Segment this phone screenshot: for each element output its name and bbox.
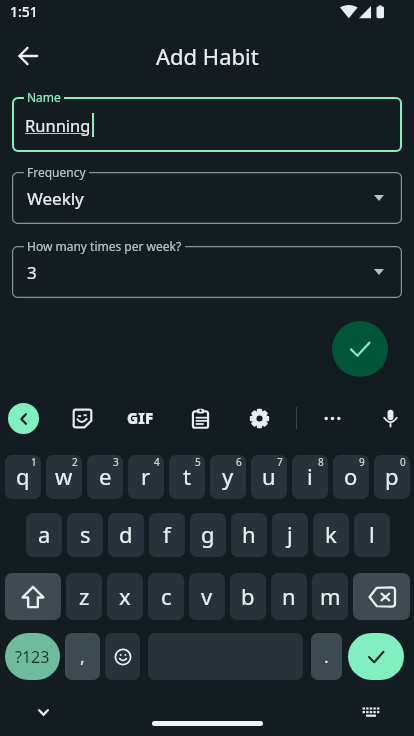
staticText: .: [324, 646, 329, 668]
button[interactable]: Emoji: [105, 633, 140, 680]
staticText: 3: [113, 455, 119, 469]
button[interactable]: i: [292, 455, 328, 499]
button[interactable]: Switch keyboard: [353, 694, 389, 730]
staticText: d: [119, 519, 133, 549]
staticText: y: [222, 461, 234, 491]
button[interactable]: ?123: [5, 633, 60, 680]
staticText: 4: [154, 455, 160, 469]
staticText: ,: [80, 646, 85, 668]
staticText: u: [262, 461, 276, 491]
button[interactable]: Back: [8, 36, 48, 76]
staticText: s: [80, 519, 91, 549]
button[interactable]: y: [210, 455, 246, 499]
staticText: c: [161, 581, 172, 611]
staticText: Name: [27, 89, 61, 105]
staticText: b: [241, 581, 255, 611]
staticText: 2: [72, 455, 78, 469]
staticText: 1:51: [10, 2, 38, 21]
button[interactable]: w: [46, 455, 82, 499]
button[interactable]: Enter: [348, 633, 404, 680]
button[interactable]: o: [333, 455, 369, 499]
button[interactable]: k: [313, 513, 349, 557]
staticText: z: [79, 581, 90, 611]
button[interactable]: e: [87, 455, 123, 499]
staticText: 5: [195, 455, 201, 469]
staticText: v: [201, 581, 213, 611]
button[interactable]: Frequency: [12, 172, 402, 224]
button[interactable]: .: [311, 633, 342, 680]
button[interactable]: s: [67, 513, 103, 557]
button[interactable]: z: [66, 573, 102, 620]
button[interactable]: a: [26, 513, 62, 557]
button[interactable]: c: [148, 573, 184, 620]
button[interactable]: g: [190, 513, 226, 557]
button[interactable]: Home: [152, 721, 263, 726]
staticText: w: [55, 461, 73, 491]
button[interactable]: Collapse toolbar: [8, 403, 39, 434]
button[interactable]: d: [108, 513, 144, 557]
staticText: Running: [25, 114, 91, 136]
button[interactable]: l: [354, 513, 390, 557]
button[interactable]: Shift: [5, 573, 61, 620]
staticText: e: [99, 461, 112, 491]
button[interactable]: Hide keyboard: [25, 694, 61, 730]
button[interactable]: Clipboard: [182, 400, 218, 436]
button[interactable]: x: [107, 573, 143, 620]
button[interactable]: More options: [314, 400, 350, 436]
button[interactable]: n: [271, 573, 307, 620]
staticText: 9: [359, 455, 365, 469]
staticText: j: [287, 519, 293, 549]
button[interactable]: Save habit: [332, 321, 388, 377]
staticText: q: [16, 461, 30, 491]
staticText: Add Habit: [156, 41, 259, 71]
staticText: x: [119, 581, 131, 611]
staticText: 1: [31, 455, 37, 469]
button[interactable]: q: [5, 455, 41, 499]
button[interactable]: Name: [12, 97, 402, 152]
staticText: l: [369, 519, 375, 549]
staticText: r: [141, 461, 151, 491]
button[interactable]: Stickers: [64, 400, 100, 436]
staticText: t: [183, 461, 191, 491]
button[interactable]: j: [272, 513, 308, 557]
button[interactable]: b: [230, 573, 266, 620]
button[interactable]: Settings: [241, 400, 277, 436]
staticText: 7: [277, 455, 283, 469]
staticText: p: [385, 461, 399, 491]
button[interactable]: h: [231, 513, 267, 557]
button[interactable]: f: [149, 513, 185, 557]
staticText: i: [307, 461, 313, 491]
staticText: Frequency: [27, 164, 86, 180]
button[interactable]: Voice input: [372, 400, 408, 436]
staticText: ?123: [15, 646, 50, 668]
staticText: 6: [236, 455, 242, 469]
staticText: 3: [27, 261, 37, 284]
button[interactable]: t: [169, 455, 205, 499]
staticText: Weekly: [27, 187, 84, 210]
staticText: 8: [318, 455, 324, 469]
button[interactable]: How many times per week?: [12, 246, 402, 298]
staticText: GIF: [127, 408, 154, 428]
staticText: k: [325, 519, 337, 549]
button[interactable]: GIF: [122, 400, 158, 436]
button[interactable]: Backspace: [353, 573, 410, 620]
staticText: How many times per week?: [27, 238, 182, 254]
staticText: n: [282, 581, 296, 611]
staticText: o: [344, 461, 358, 491]
staticText: h: [242, 519, 256, 549]
button[interactable]: p: [374, 455, 410, 499]
button[interactable]: u: [251, 455, 287, 499]
staticText: 0: [400, 455, 406, 469]
staticText: a: [38, 519, 51, 549]
button[interactable]: r: [128, 455, 164, 499]
button[interactable]: v: [189, 573, 225, 620]
staticText: g: [201, 519, 215, 549]
button[interactable]: m: [312, 573, 348, 620]
staticText: m: [320, 581, 341, 611]
button[interactable]: ,: [65, 633, 100, 680]
staticText: f: [163, 519, 171, 549]
